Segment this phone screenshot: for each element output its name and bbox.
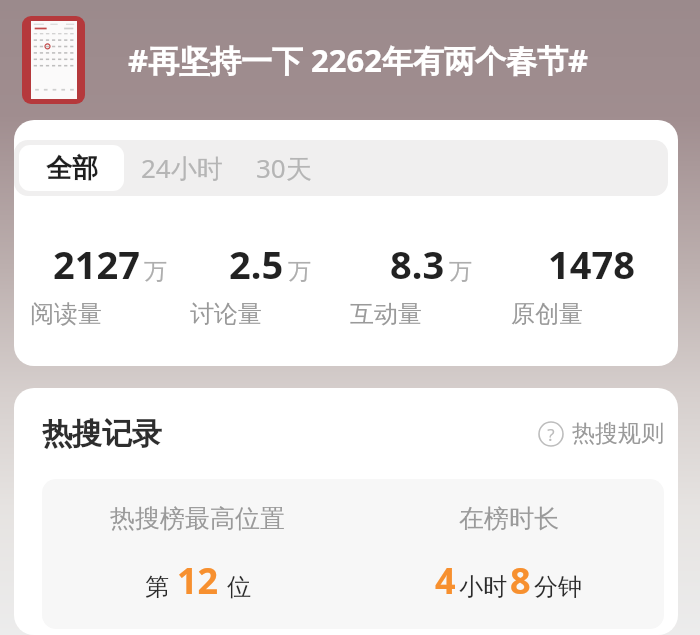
button[interactable]: 2.5	[190, 238, 350, 329]
staticText: 万	[449, 257, 472, 286]
staticText: 小时	[459, 572, 507, 602]
button[interactable]: Topic preview image	[22, 16, 85, 104]
staticText: 8.3	[390, 238, 445, 290]
staticText: 万	[144, 257, 167, 286]
staticText: 在榜时长	[459, 503, 559, 534]
button[interactable]: Hot search rules help	[538, 419, 664, 448]
staticText: #再坚持一下 2262年有两个春节#	[128, 39, 589, 81]
staticText: 数据总览	[42, 149, 162, 187]
staticText: 8	[510, 556, 531, 605]
staticText: 4	[435, 556, 456, 605]
staticText: 24小时	[141, 150, 223, 186]
staticText: 阅读量	[30, 299, 190, 329]
staticText: 全部	[46, 152, 98, 185]
staticText: 位	[227, 572, 251, 602]
button[interactable]: 24小时	[129, 140, 234, 196]
staticText: 互动量	[350, 299, 511, 329]
staticText: 讨论量	[190, 299, 350, 329]
button[interactable]: 8.3	[350, 238, 511, 329]
button[interactable]: 2127	[30, 238, 190, 329]
staticText: 原创量	[511, 299, 672, 329]
staticText: 热搜榜最高位置	[110, 503, 285, 534]
staticText: 30天	[256, 150, 312, 186]
other: Hot search rules help	[538, 421, 564, 447]
button[interactable]: 全部	[19, 145, 124, 191]
button[interactable]: 30天	[234, 140, 334, 196]
staticText: 2127	[53, 238, 140, 290]
staticText: 热搜规则	[572, 419, 664, 448]
staticText: 12	[177, 556, 219, 605]
staticText: ?	[547, 423, 555, 446]
staticText: 第	[145, 572, 169, 602]
staticText: 热搜记录	[42, 415, 162, 453]
button[interactable]: 1478	[511, 238, 672, 329]
staticText: 1478	[548, 238, 635, 290]
staticText: 2.5	[229, 238, 284, 290]
staticText: 万	[288, 257, 311, 286]
staticText: 分钟	[534, 572, 582, 602]
